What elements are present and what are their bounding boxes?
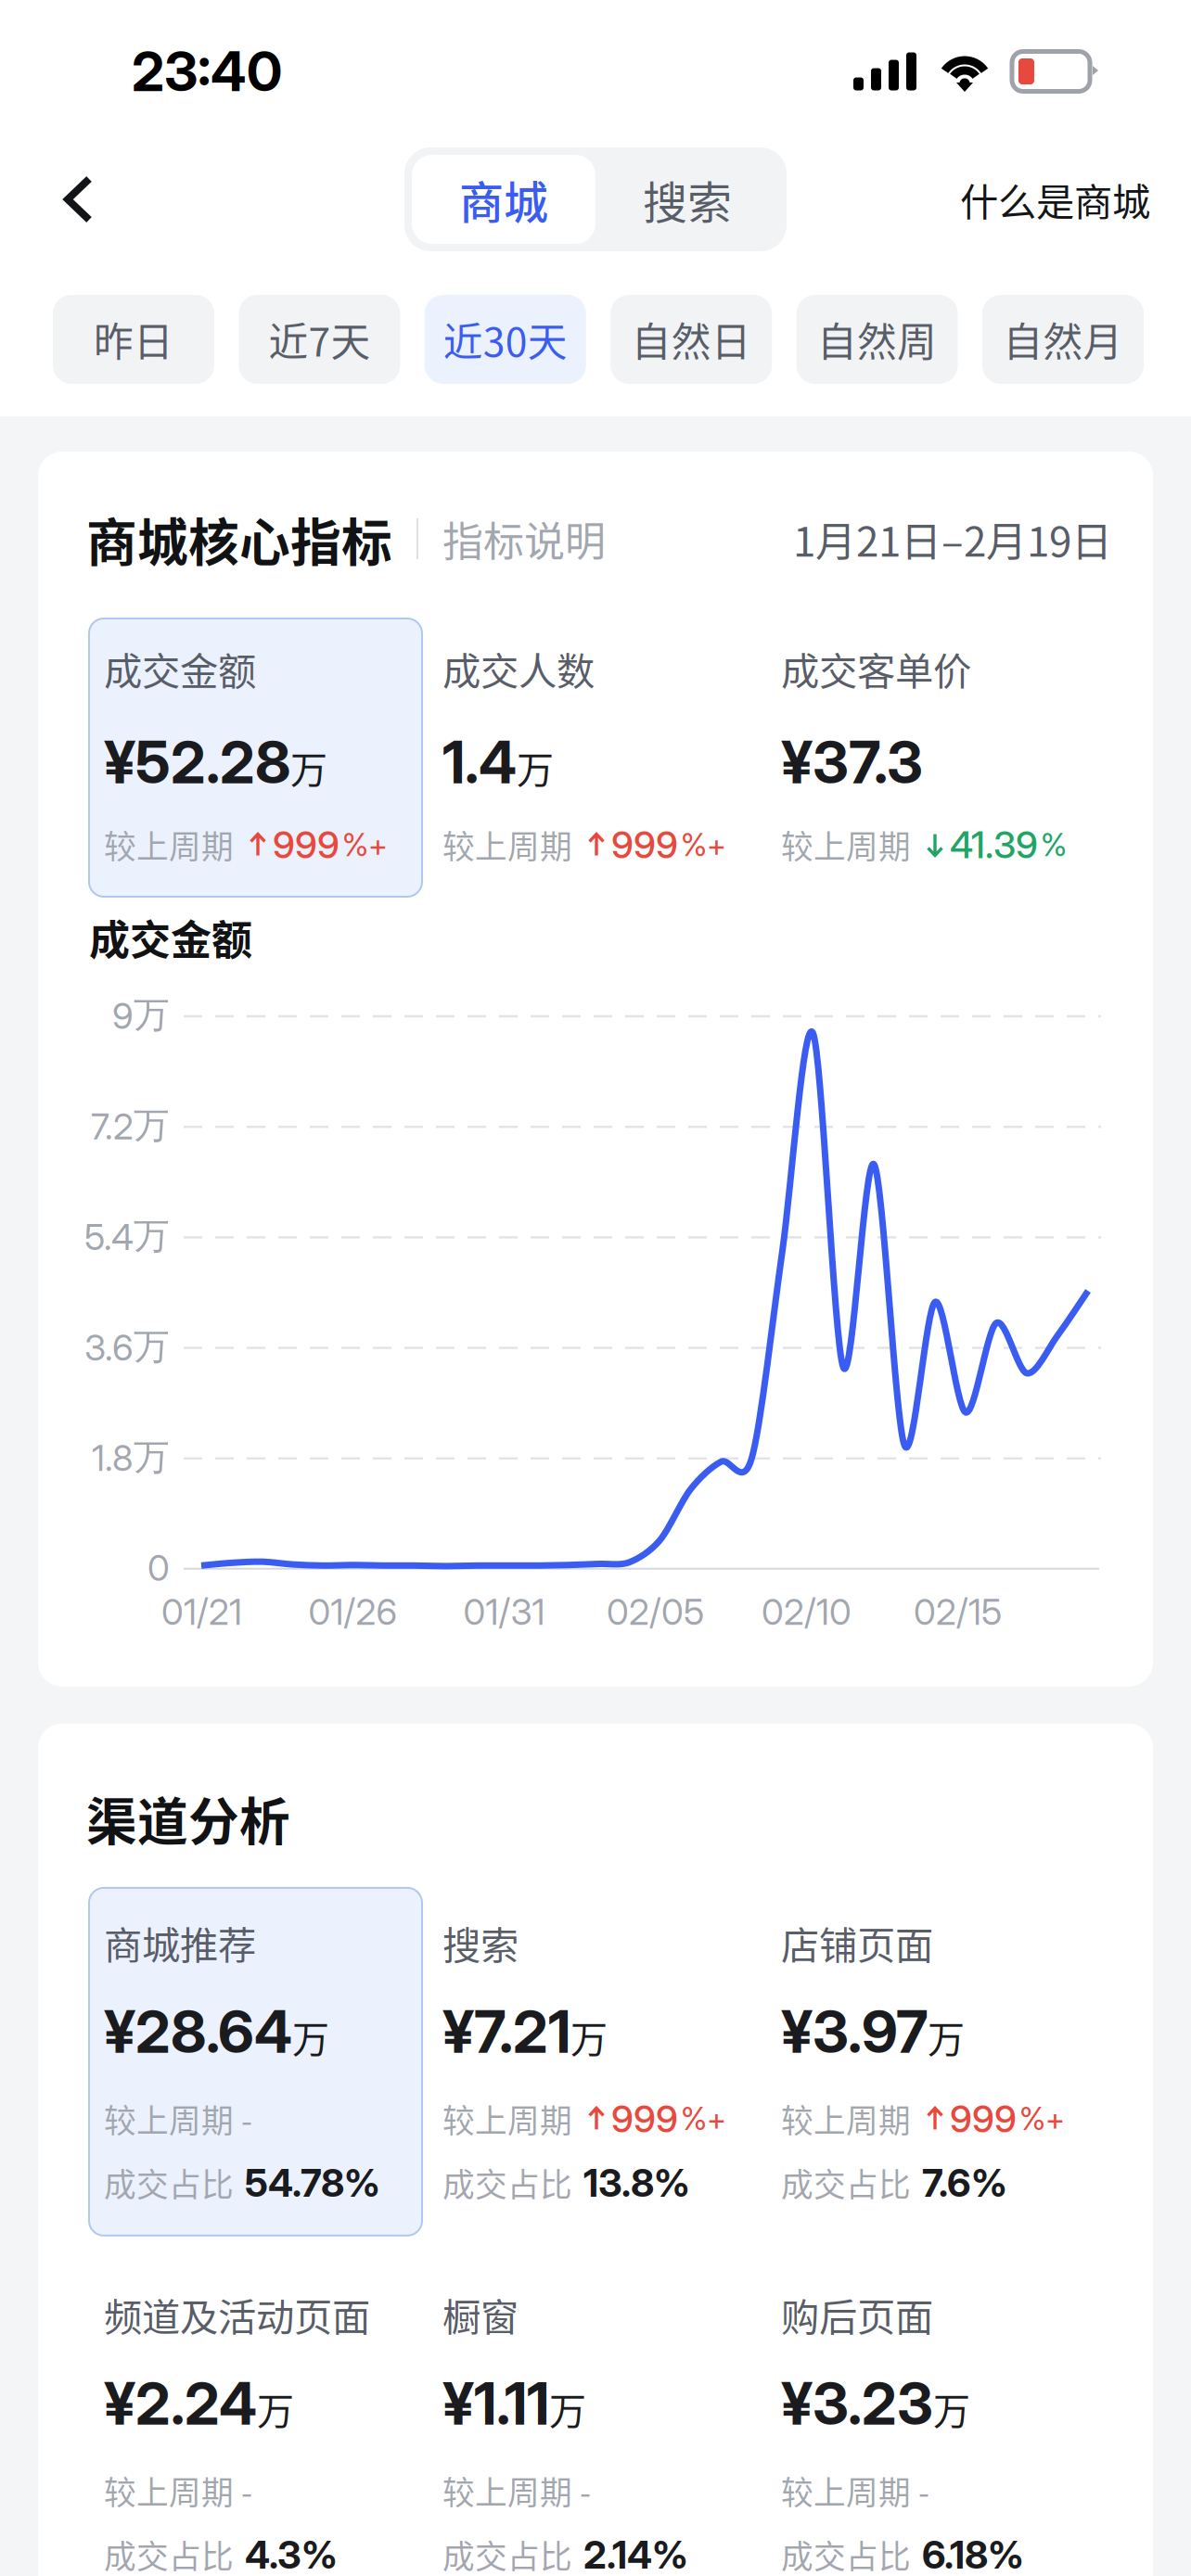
button[interactable]: 成交客单价 [766,618,1099,897]
button[interactable]: 自然月 [982,295,1144,384]
staticText: 商城推荐 [104,1915,256,1970]
staticText: + [707,2100,726,2137]
staticText: 万 [290,740,327,794]
staticText: 较上周期 [104,821,234,868]
button[interactable]: 自然日 [611,295,772,384]
staticText: 01/26 [308,1590,397,1633]
staticText: 近7天 [268,311,370,368]
button[interactable]: 搜索 [595,155,779,244]
button[interactable]: 搜索 [428,1888,761,2236]
staticText: ¥2.24 [104,2368,257,2439]
staticText: 02/05 [607,1590,704,1633]
button[interactable]: 商城 [412,155,595,244]
staticText: 成交客单价 [781,641,971,696]
staticText: - [572,2467,591,2514]
staticText: 较上周期 [781,2467,911,2514]
button[interactable]: 近30天 [425,295,586,384]
staticText: % [1041,826,1067,863]
staticText: 02/10 [762,1590,852,1633]
staticText: 较上周期 [442,821,572,868]
staticText: ¥3.23 [781,2368,933,2439]
staticText: 6.18% [922,2531,1024,2576]
staticText: + [707,826,726,863]
staticText: 较上周期 [781,2095,911,2142]
staticText: 1.8万 [92,1435,170,1480]
staticText: 橱窗 [442,2287,519,2342]
staticText: 渠道分析 [86,1781,290,1854]
staticText: 商城核心指标 [86,502,392,575]
staticText: 54.78% [245,2160,380,2206]
staticText: 昨日 [94,311,173,368]
button[interactable]: 1月21日–2月19日 [793,509,1112,568]
staticText: 较上周期 [104,2095,234,2142]
staticText: 较上周期 [781,821,911,868]
staticText: 01/31 [463,1590,545,1633]
button[interactable]: 成交金额 [89,618,422,897]
staticText: 1月21日–2月19日 [793,509,1112,568]
staticText: 较上周期 [442,2095,572,2142]
button[interactable]: 昨日 [53,295,214,384]
staticText: 万 [549,2382,586,2435]
staticText: 成交金额 [89,908,252,967]
staticText: % [1019,2100,1045,2137]
staticText: ¥7.21 [442,1996,570,2067]
staticText: 什么是商城 [960,172,1150,227]
staticText: 1.4 [442,727,517,797]
staticText: 自然月 [1003,311,1123,368]
staticText: 自然周 [817,311,937,368]
button[interactable]: 返回 [0,143,181,256]
staticText: 成交金额 [104,641,256,696]
staticText: 02/15 [914,1590,1002,1633]
staticText: 万 [517,740,554,794]
button[interactable]: 商城推荐 [89,1888,422,2236]
staticText: 成交占比 [104,2531,234,2576]
staticText: + [368,826,388,863]
button[interactable]: 近7天 [239,295,400,384]
staticText: 7.6% [922,2160,1007,2206]
staticText: 万 [292,2010,329,2063]
staticText: + [1045,2100,1065,2137]
button[interactable]: 成交人数 [428,618,761,897]
staticText: 近30天 [443,311,567,368]
button[interactable]: 指标说明 [442,509,606,568]
staticText: % [342,826,368,863]
staticText: 成交占比 [781,2531,911,2576]
staticText: 购后页面 [781,2287,933,2342]
staticText: 店铺页面 [781,1915,933,1970]
button[interactable]: 自然周 [796,295,958,384]
staticText: - [234,2095,252,2142]
button[interactable]: 橱窗 [428,2260,761,2576]
staticText: 2.14% [583,2531,688,2576]
staticText: 搜索 [442,1915,519,1970]
staticText: 商城 [459,167,548,232]
staticText: 3.6万 [84,1324,170,1369]
staticText: ¥28.64 [104,1996,292,2067]
staticText: 搜索 [643,167,732,232]
button[interactable]: 购后页面 [766,2260,1099,2576]
staticText: 13.8% [583,2160,690,2206]
staticText: 4.3% [245,2531,338,2576]
staticText: 频道及活动页面 [104,2287,370,2342]
staticText: 万 [570,2010,608,2063]
staticText: ¥1.11 [442,2368,549,2439]
staticText: 01/21 [161,1590,242,1633]
staticText: % [681,2100,707,2137]
staticText: 自然日 [631,311,751,368]
button[interactable]: 店铺页面 [766,1888,1099,2236]
staticText: - [911,2467,929,2514]
staticText: ¥3.97 [781,1996,928,2067]
staticText: 23:40 [132,38,282,104]
staticText: 9万 [112,993,170,1038]
button[interactable]: 什么是商城 [960,143,1191,256]
staticText: 999 [950,2096,1017,2141]
button[interactable]: 频道及活动页面 [89,2260,422,2576]
staticText: 万 [257,2382,294,2435]
staticText: 成交占比 [442,2531,572,2576]
staticText: ¥37.3 [781,727,923,797]
staticText: 999 [611,2096,678,2141]
staticText: 成交占比 [104,2159,234,2206]
staticText: 指标说明 [442,509,606,568]
staticText: 999 [611,822,678,867]
staticText: 较上周期 [442,2467,572,2514]
staticText: ¥52.28 [104,727,290,797]
